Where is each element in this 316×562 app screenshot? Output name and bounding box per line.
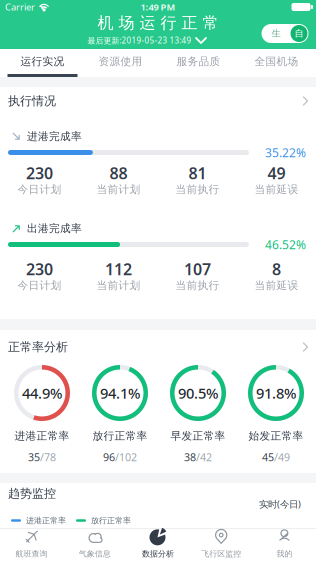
staticText: 飞行区监控 [201,549,241,559]
staticText: 最后更新:2019-05-23 13:49 [87,35,191,46]
staticText: 进港完成率 [27,130,82,143]
button[interactable]: 实时(今日) [259,498,301,510]
staticText: 出港完成率 [27,222,82,235]
staticText: 44.9% [22,383,62,403]
staticText: 112 [105,258,132,280]
button[interactable]: 航班查询 [0,529,63,561]
staticText: 当前延误 [254,183,298,196]
staticText: /49 [274,450,290,464]
staticText: 趋势监控 [8,486,56,501]
staticText: 早发正常率 [170,429,225,442]
staticText: 进港正常率 [14,429,69,442]
staticText: 35 [28,450,40,464]
staticText: 45 [262,450,274,464]
staticText: 生 [271,28,280,39]
staticText: 放行正常率 [92,429,147,442]
staticText: 服务品质 [176,55,220,68]
staticText: 资源使用 [98,55,142,68]
button[interactable]: 数据分析 [126,529,190,561]
staticText: 机 场 运 行 正 常 [97,13,218,33]
staticText: 91.8% [256,383,296,403]
staticText: 数据分析 [142,549,174,559]
button[interactable]: 全国机场 [237,49,315,77]
staticText: 放行正常率 [91,516,131,525]
button[interactable]: 我的 [253,529,316,561]
button[interactable]: 服务品质 [159,49,237,77]
staticText: 49 [267,162,285,184]
staticText: /42 [196,450,212,464]
staticText: 46.52% [265,236,306,252]
staticText: 全国机场 [254,55,298,68]
staticText: /102 [115,450,137,464]
button[interactable]: 展开 [195,37,206,43]
button[interactable]: 运行实况 [3,49,81,77]
staticText: 执行情况 [8,94,56,108]
staticText: 230 [26,162,53,184]
button[interactable]: 正常率分析 [0,330,316,354]
staticText: 当前延误 [254,279,298,292]
staticText: 35.22% [265,144,306,160]
staticText: 自 [294,28,303,39]
button[interactable]: 执行情况 [0,87,316,108]
staticText: 230 [26,258,53,280]
staticText: 当前执行 [175,279,219,292]
staticText: 1:49 PM [140,1,175,13]
staticText: 气象信息 [79,549,111,559]
staticText: 94.1% [100,383,140,403]
staticText: 81 [188,162,206,184]
staticText: 当前计划 [96,183,140,196]
staticText: 38 [184,450,196,464]
staticText: 运行实况 [20,55,64,68]
staticText: 今日计划 [17,183,61,196]
staticText: 当前计划 [96,279,140,292]
staticText: /78 [40,450,56,464]
staticText: 正常率分析 [8,340,68,354]
staticText: 我的 [276,549,292,559]
button[interactable]: 资源使用 [81,49,159,77]
staticText: 进港正常率 [26,516,66,525]
staticText: 8 [272,258,281,280]
staticText: 107 [184,258,211,280]
staticText: 今日计划 [17,279,61,292]
staticText: 88 [109,162,127,184]
staticText: 90.5% [178,383,218,403]
staticText: 实时(今日) [259,498,301,510]
staticText: 航班查询 [16,549,48,559]
staticText: 96 [103,450,115,464]
staticText: 当前执行 [175,183,219,196]
staticText: 始发正常率 [248,429,303,442]
button[interactable]: 生/自 切换 [261,24,308,43]
button[interactable]: 飞行区监控 [190,529,253,561]
button[interactable]: 气象信息 [63,529,126,561]
staticText: Carrier [5,1,35,13]
